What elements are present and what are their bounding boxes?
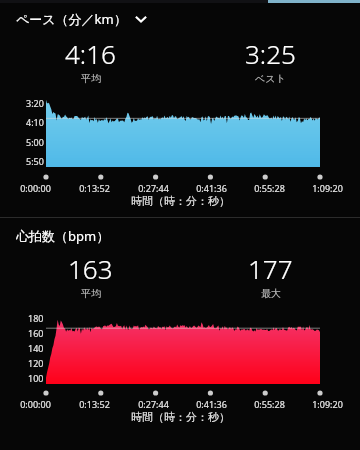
staticText: 時間（時：分：秒） [131, 194, 230, 208]
button[interactable]: ペース（分／km） [16, 10, 360, 28]
staticText: ベスト [255, 72, 286, 85]
staticText: 100 [28, 372, 44, 384]
button[interactable]: 心拍数（bpm） [16, 227, 360, 245]
staticText: 180 [28, 312, 44, 324]
staticText: 5:50 [26, 155, 44, 167]
staticText: 160 [28, 327, 44, 339]
staticText: 177 [248, 251, 293, 286]
staticText: 163 [68, 251, 113, 286]
staticText: 0:27:44 [138, 398, 169, 410]
staticText: 心拍数（bpm） [16, 227, 110, 245]
staticText: 1:09:20 [312, 398, 343, 410]
other: Change metric [133, 11, 149, 27]
staticText: 0:55:28 [254, 182, 285, 194]
staticText: 3:25 [245, 36, 296, 71]
staticText: 0:41:36 [196, 398, 227, 410]
staticText: 0:13:52 [79, 182, 110, 194]
staticText: 4:10 [26, 116, 44, 128]
staticText: 平均 [81, 287, 101, 300]
staticText: 最大 [261, 287, 281, 300]
staticText: 0:13:52 [79, 398, 110, 410]
staticText: 0:00:00 [20, 182, 51, 194]
staticText: 0:00:00 [20, 398, 51, 410]
staticText: 0:41:36 [196, 182, 227, 194]
staticText: 1:09:20 [312, 182, 343, 194]
staticText: ペース（分／km） [16, 10, 127, 28]
staticText: 0:55:28 [254, 398, 285, 410]
staticText: 平均 [81, 72, 101, 85]
staticText: 3:20 [26, 97, 44, 109]
staticText: 時間（時：分：秒） [131, 410, 230, 424]
staticText: 140 [28, 342, 44, 354]
staticText: 0:27:44 [138, 182, 169, 194]
staticText: 5:00 [26, 136, 44, 148]
staticText: 120 [28, 357, 44, 369]
staticText: 4:16 [65, 36, 116, 71]
